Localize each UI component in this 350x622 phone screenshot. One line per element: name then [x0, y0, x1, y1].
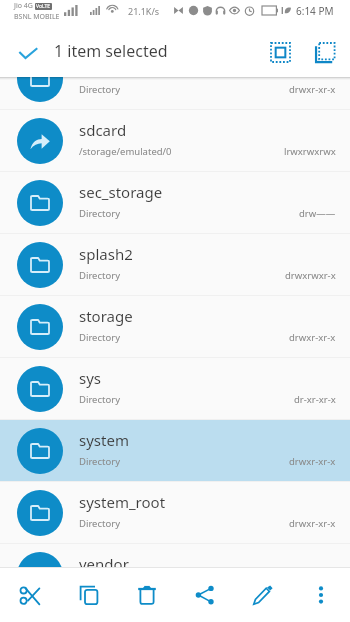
button[interactable]: Share — [176, 567, 234, 622]
staticText: Directory — [79, 269, 285, 282]
button[interactable]: Done — [8, 33, 48, 73]
staticText: /storage/emulated/0 — [79, 145, 284, 158]
staticText: Directory — [79, 207, 299, 220]
button[interactable]: Rename — [234, 567, 292, 622]
staticText: Directory — [79, 455, 289, 468]
staticText: BSNL MOBILE — [14, 12, 60, 22]
button[interactable]: sec_storage — [0, 172, 350, 234]
staticText: drwxr-xr-x — [289, 517, 336, 530]
button[interactable]: Copy — [59, 567, 118, 622]
staticText: system — [79, 430, 129, 450]
staticText: Directory — [79, 331, 289, 344]
button[interactable]: Select all — [261, 33, 300, 72]
button[interactable]: storage — [0, 296, 350, 358]
button[interactable]: sdcard — [0, 110, 350, 172]
staticText: 21.1K/s — [128, 5, 160, 17]
staticText: drwxr-xr-x — [289, 331, 336, 344]
staticText: Jio 4G — [14, 1, 33, 11]
button[interactable]: Delete — [118, 567, 176, 622]
staticText: lrwxrwxrwx — [284, 145, 336, 158]
staticText: storage — [79, 306, 133, 326]
button[interactable]: Directory — [0, 77, 350, 110]
button[interactable]: vendor — [0, 544, 350, 567]
button[interactable]: sys — [0, 358, 350, 420]
button[interactable]: system — [0, 420, 350, 482]
staticText: splash2 — [79, 244, 133, 264]
staticText: VoLTE — [36, 3, 51, 10]
button[interactable]: Invert selection — [306, 33, 345, 72]
staticText: 1 item selected — [54, 40, 168, 62]
button[interactable]: splash2 — [0, 234, 350, 296]
staticText: dr-xr-xr-x — [294, 393, 336, 406]
staticText: Directory — [79, 83, 289, 96]
button[interactable]: system_root — [0, 482, 350, 544]
staticText: drw—— — [299, 207, 336, 220]
staticText: Directory — [79, 517, 289, 530]
staticText: sec_storage — [79, 182, 163, 202]
staticText: sys — [79, 368, 102, 388]
staticText: drwxr-xr-x — [289, 455, 336, 468]
staticText: vendor — [79, 554, 129, 567]
staticText: 6:14 PM — [296, 4, 334, 18]
staticText: Directory — [79, 393, 294, 406]
button[interactable]: More options — [292, 567, 350, 622]
button[interactable]: Cut — [0, 567, 59, 622]
staticText: drwxr-xr-x — [289, 83, 336, 96]
staticText: drwxrwxr-x — [285, 269, 336, 282]
staticText: sdcard — [79, 120, 127, 140]
staticText: system_root — [79, 492, 166, 512]
